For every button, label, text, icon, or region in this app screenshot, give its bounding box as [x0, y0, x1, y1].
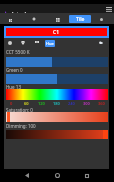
staticText: AstroApp [11, 11, 34, 18]
button[interactable] [6, 112, 108, 122]
staticText: 180 [53, 101, 60, 106]
staticText: Dimming: 100 [6, 123, 36, 129]
button[interactable]: Home [46, 169, 68, 182]
button[interactable] [6, 89, 108, 100]
staticText: 60 [24, 101, 29, 106]
button[interactable]: Layouts [6, 15, 16, 23]
staticText: Hue 13 [6, 84, 21, 90]
button[interactable]: Back [16, 169, 38, 182]
staticText: C1 [53, 29, 60, 36]
staticText: CCT 5500 K [6, 49, 30, 55]
staticText: 120 [38, 101, 45, 106]
staticText: Hue [46, 41, 54, 46]
staticText: 300 [83, 101, 90, 106]
button[interactable]: Gem [19, 38, 27, 46]
staticText: 240 [68, 101, 75, 106]
button[interactable]: Menu [102, 5, 113, 12]
staticText: 360 [98, 101, 105, 106]
button[interactable]: Grid [53, 14, 62, 23]
staticText: Tile [76, 16, 85, 23]
staticText: Saturation: 0 [6, 107, 33, 113]
button[interactable] [6, 130, 108, 139]
button[interactable]: Cloud [97, 38, 105, 46]
button[interactable]: Color [6, 38, 14, 46]
button[interactable]: Profile [98, 16, 106, 24]
staticText: 0 [10, 101, 13, 106]
button[interactable]: C1 [4, 26, 109, 38]
button[interactable]: Recent apps [76, 169, 98, 182]
button[interactable]: Tile [69, 15, 91, 23]
button[interactable]: Preset [33, 38, 41, 46]
button[interactable]: Effects [30, 15, 38, 23]
staticText: Green 0 [6, 67, 23, 73]
button[interactable] [6, 74, 108, 84]
button[interactable]: Hue [45, 40, 55, 47]
button[interactable] [6, 57, 108, 67]
